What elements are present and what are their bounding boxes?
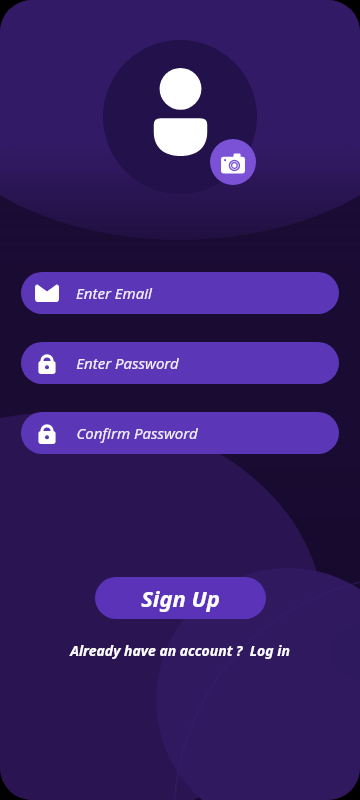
button[interactable]: Change profile photo [210, 139, 256, 185]
button[interactable]: Confirm Password [21, 412, 339, 454]
staticText: Sign Up [141, 583, 220, 613]
staticText: Enter Password [76, 353, 179, 373]
staticText: Already have an account ? Log in [70, 641, 290, 660]
staticText: Enter Email [76, 283, 152, 303]
button[interactable]: Already have an account ? Log in [70, 641, 290, 660]
staticText: Confirm Password [76, 423, 198, 443]
button[interactable]: Sign Up [95, 577, 266, 619]
button[interactable]: Enter Password [21, 342, 339, 384]
button[interactable]: Enter Email [21, 272, 339, 314]
